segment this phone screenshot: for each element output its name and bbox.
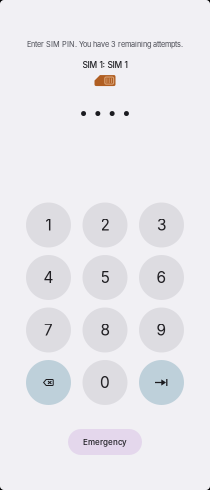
button[interactable]: 2 [82, 202, 127, 247]
button[interactable]: 4 [26, 255, 71, 300]
staticText: 4 [43, 268, 53, 287]
button[interactable]: 1 [26, 202, 71, 247]
button[interactable]: Emergency [68, 429, 142, 455]
button[interactable]: 0 [82, 360, 127, 405]
button[interactable]: Enter [139, 360, 184, 405]
staticText: Enter SIM PIN. You have 3 remaining atte… [27, 40, 183, 49]
staticText: SIM 1: SIM 1 [82, 60, 127, 70]
staticText: 1 [45, 216, 51, 234]
staticText: 0 [100, 373, 110, 392]
button[interactable]: 3 [139, 202, 184, 247]
button[interactable]: 5 [82, 255, 127, 300]
button[interactable]: 9 [139, 307, 184, 352]
staticText: Emergency [83, 437, 127, 447]
staticText: 6 [156, 268, 166, 287]
staticText: 7 [44, 321, 53, 339]
staticText: 5 [100, 268, 109, 287]
button[interactable]: 7 [26, 307, 71, 352]
staticText: 2 [100, 216, 109, 234]
button[interactable]: 8 [82, 307, 127, 352]
button[interactable]: 6 [139, 255, 184, 300]
staticText: 9 [156, 321, 166, 339]
staticText: 3 [157, 216, 166, 234]
button[interactable]: Delete [26, 360, 71, 405]
staticText: 8 [100, 321, 109, 339]
